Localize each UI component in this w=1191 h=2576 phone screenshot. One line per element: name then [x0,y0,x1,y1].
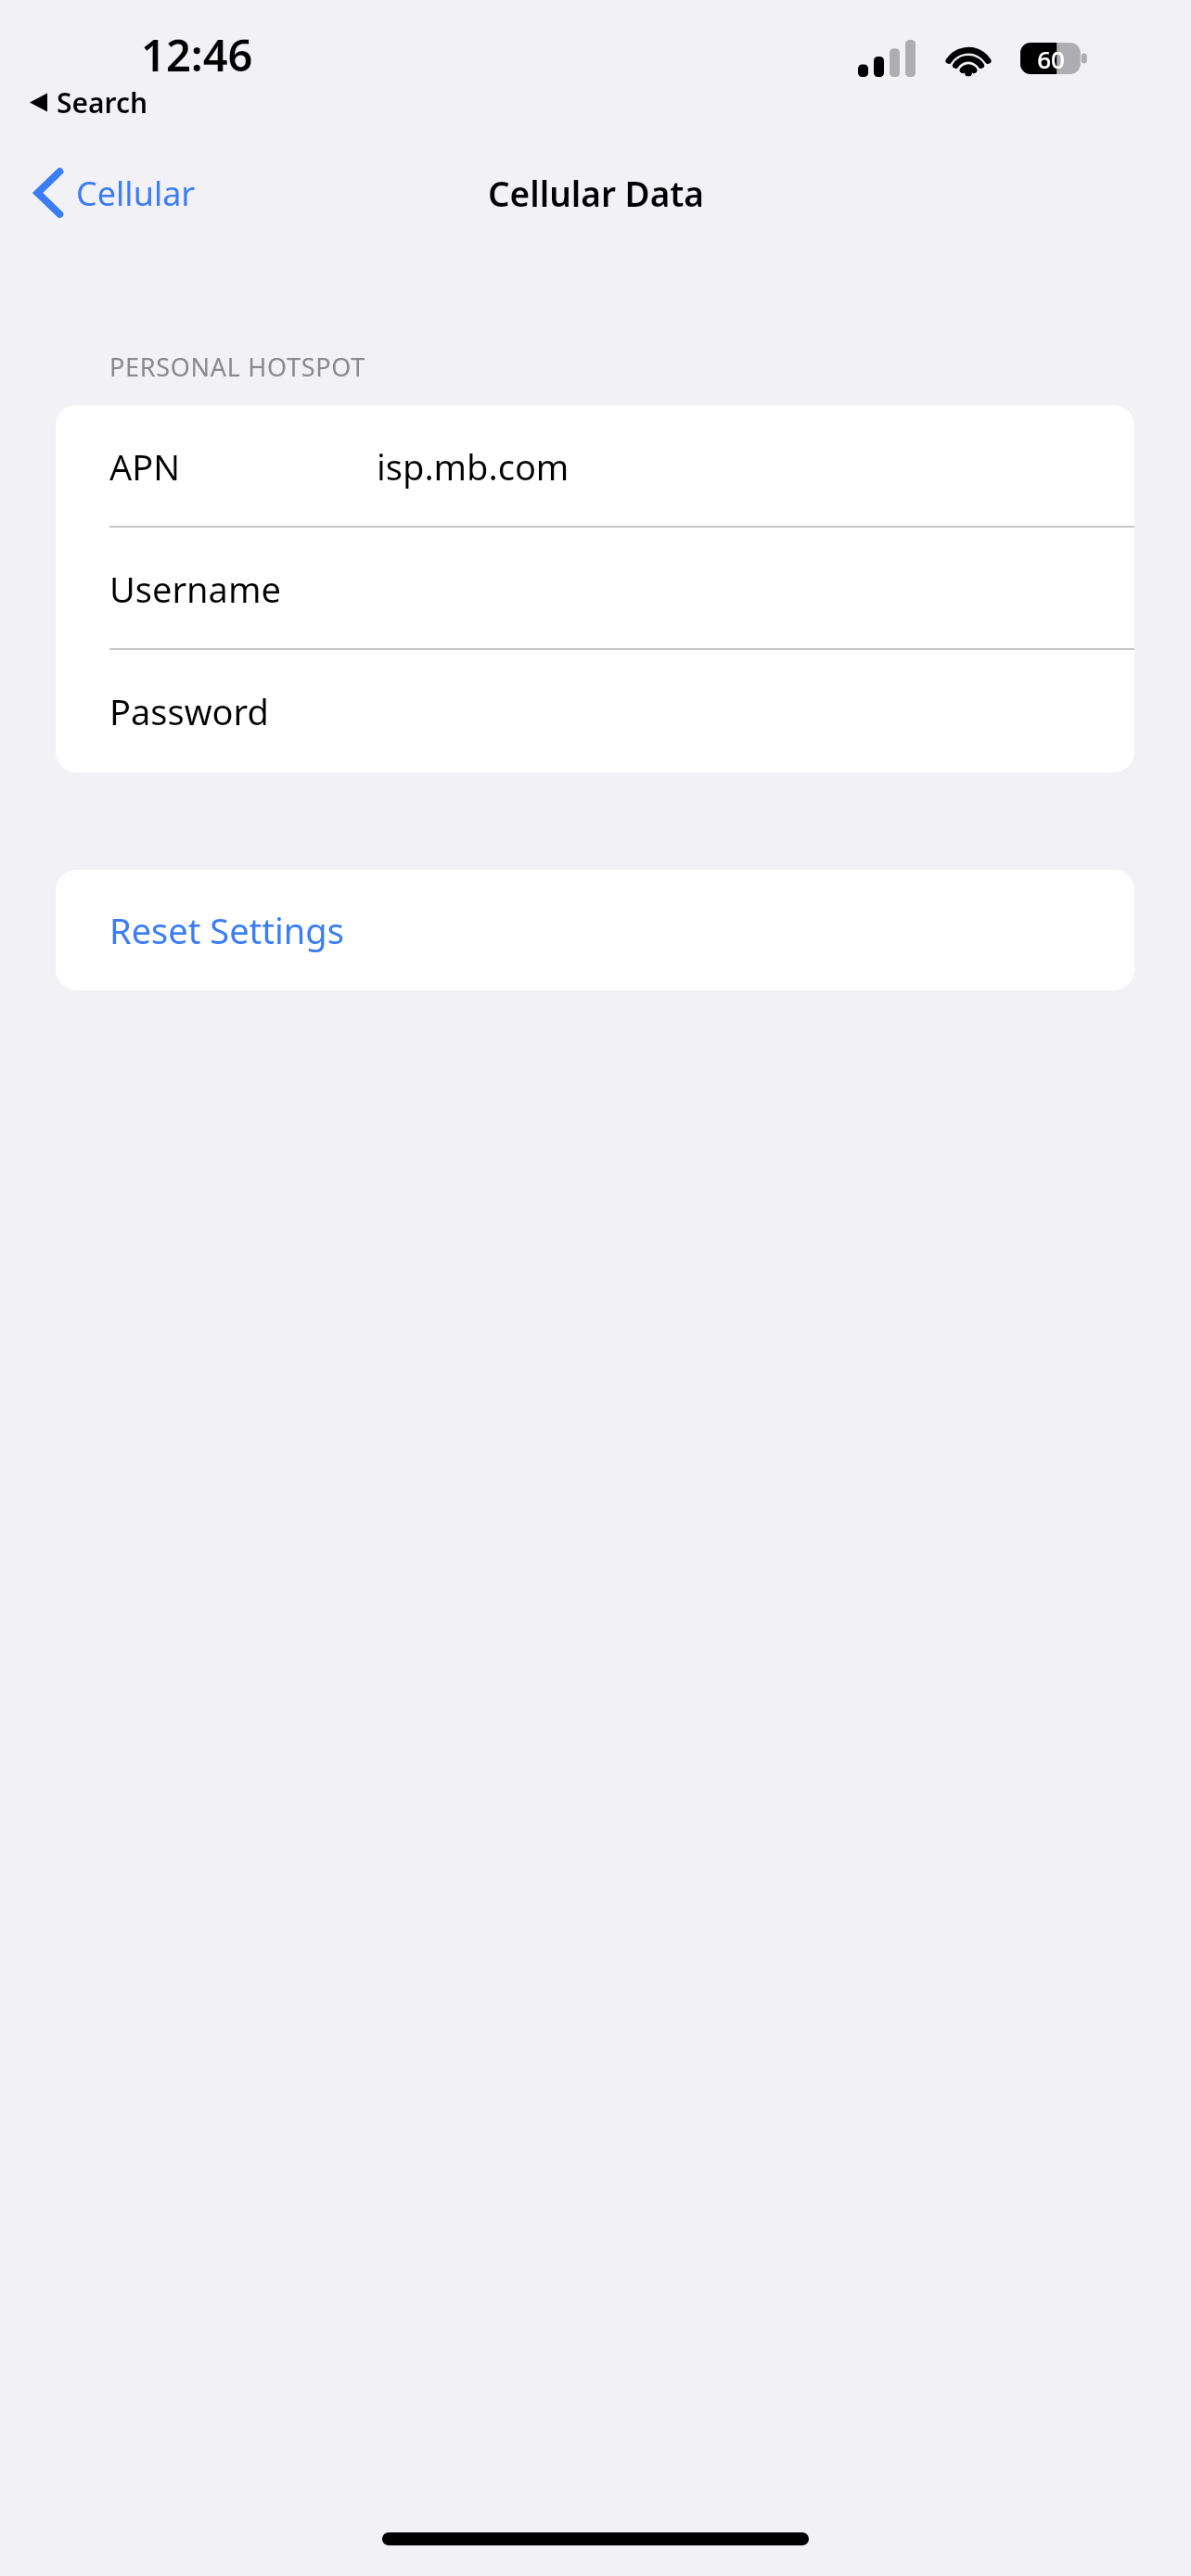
staticText: APN [109,442,181,491]
staticText: 60 [1037,43,1065,74]
other: Battery 60 percent [1020,43,1087,74]
staticText: Reset Settings [109,906,344,954]
other: Wi-Fi [941,39,995,78]
staticText: Cellular [76,171,196,216]
button[interactable]: Search [24,82,154,122]
button[interactable]: Username [56,528,1134,650]
staticText: isp.mb.com [377,442,570,491]
staticText: PERSONAL HOTSPOT [109,350,365,384]
staticText: Username [109,565,281,613]
staticText: Search [57,83,148,121]
button[interactable]: APN [56,405,1134,528]
button[interactable]: Password [56,650,1134,772]
staticText: Password [109,687,269,735]
staticText: Cellular Data [488,170,704,216]
button[interactable]: Reset Settings [56,870,1134,990]
other: Cellular signal [858,40,916,77]
button[interactable]: Cellular [28,159,205,226]
staticText: 12:46 [141,25,253,77]
